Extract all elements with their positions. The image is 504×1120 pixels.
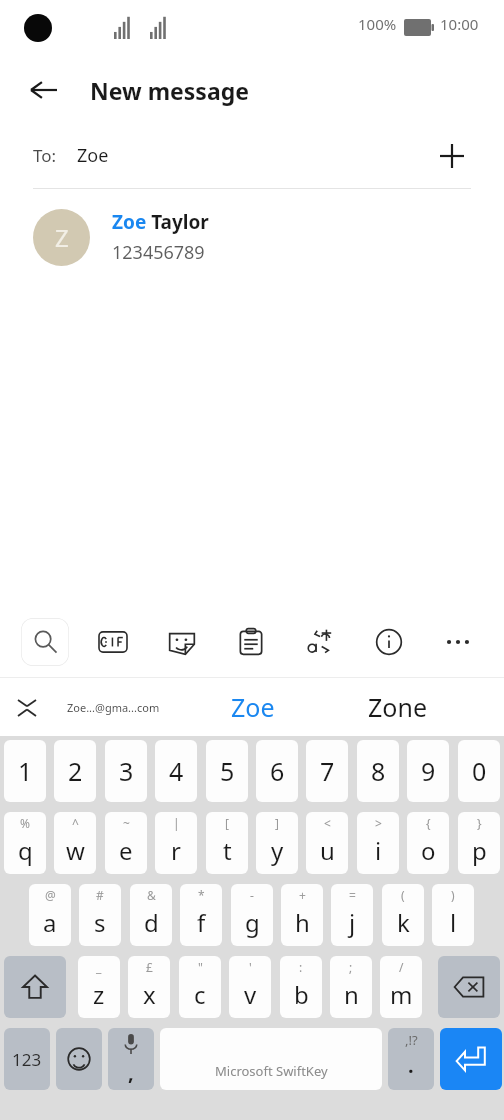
- staticText: g: [245, 906, 260, 939]
- button[interactable]: Backspace: [438, 956, 500, 1018]
- staticText: i: [375, 834, 382, 867]
- staticText: s: [94, 906, 106, 939]
- button[interactable]: ^: [54, 812, 96, 874]
- button[interactable]: ': [229, 956, 271, 1018]
- button[interactable]: More options: [434, 618, 482, 666]
- staticText: z: [93, 978, 105, 1011]
- button[interactable]: 8: [357, 740, 399, 802]
- staticText: 100%: [358, 14, 397, 34]
- staticText: 6: [270, 754, 285, 788]
- staticText: d: [144, 906, 159, 939]
- staticText: h: [295, 906, 310, 939]
- staticText: £: [146, 959, 153, 975]
- staticText: a: [43, 906, 57, 939]
- button[interactable]: ]: [256, 812, 298, 874]
- button[interactable]: >: [357, 812, 399, 874]
- staticText: t: [223, 834, 232, 867]
- button[interactable]: <: [306, 812, 348, 874]
- staticText: ~: [123, 815, 130, 831]
- button[interactable]: Send: [440, 1028, 502, 1090]
- staticText: u: [320, 834, 335, 867]
- staticText: y: [271, 834, 284, 867]
- staticText: 1: [18, 754, 33, 788]
- button[interactable]: 3: [105, 740, 147, 802]
- button[interactable]: %: [4, 812, 46, 874]
- button[interactable]: /: [380, 956, 422, 1018]
- staticText: Zoe Taylor: [112, 209, 209, 235]
- button[interactable]: 123: [4, 1028, 50, 1090]
- staticText: Z: [55, 221, 69, 254]
- staticText: [: [225, 815, 229, 831]
- button[interactable]: ~: [105, 812, 147, 874]
- staticText: 2: [68, 754, 83, 788]
- staticText: p: [472, 834, 487, 867]
- button[interactable]: _: [78, 956, 120, 1018]
- button[interactable]: ): [432, 884, 474, 946]
- button[interactable]: 7: [306, 740, 348, 802]
- button[interactable]: ": [179, 956, 221, 1018]
- button[interactable]: *: [180, 884, 222, 946]
- button[interactable]: @: [29, 884, 71, 946]
- staticText: _: [96, 959, 102, 975]
- button[interactable]: }: [458, 812, 500, 874]
- staticText: 123456789: [112, 240, 205, 265]
- button[interactable]: Back: [20, 66, 68, 114]
- button[interactable]: Voice input: [108, 1028, 154, 1090]
- button[interactable]: GIF: [89, 618, 137, 666]
- staticText: <: [324, 815, 331, 831]
- button[interactable]: #: [79, 884, 121, 946]
- staticText: }: [477, 815, 482, 831]
- button[interactable]: 6: [256, 740, 298, 802]
- staticText: 8: [371, 754, 386, 788]
- button[interactable]: Search: [21, 618, 69, 666]
- staticText: Zoe...@gma...com: [67, 700, 160, 715]
- staticText: ;: [349, 959, 353, 975]
- staticText: =: [349, 887, 356, 903]
- staticText: q: [18, 834, 33, 867]
- staticText: ,: [128, 1059, 134, 1086]
- staticText: 5: [220, 754, 235, 788]
- staticText: e: [119, 834, 133, 867]
- button[interactable]: +: [281, 884, 323, 946]
- button[interactable]: |: [155, 812, 197, 874]
- button[interactable]: 2: [54, 740, 96, 802]
- button[interactable]: Add recipient: [428, 132, 476, 180]
- button[interactable]: Emoji: [56, 1028, 102, 1090]
- staticText: New message: [90, 75, 249, 106]
- button[interactable]: {: [407, 812, 449, 874]
- button[interactable]: :: [280, 956, 322, 1018]
- button[interactable]: 0: [458, 740, 500, 802]
- button[interactable]: (: [382, 884, 424, 946]
- button[interactable]: Zoe...@gma...com: [58, 678, 168, 736]
- button[interactable]: Zoe: [195, 678, 310, 736]
- button[interactable]: Collapse keyboard toolbar: [6, 687, 48, 729]
- button[interactable]: Translate: [296, 618, 344, 666]
- staticText: k: [397, 906, 410, 939]
- button[interactable]: ;: [330, 956, 372, 1018]
- staticText: Zoe: [231, 690, 275, 724]
- staticText: %: [20, 815, 30, 831]
- button[interactable]: ,!?: [388, 1028, 434, 1090]
- button[interactable]: Info: [365, 618, 413, 666]
- button[interactable]: &: [130, 884, 172, 946]
- staticText: 123: [12, 1048, 42, 1071]
- button[interactable]: 5: [206, 740, 248, 802]
- staticText: 7: [320, 754, 335, 788]
- staticText: {: [426, 815, 431, 831]
- button[interactable]: 4: [155, 740, 197, 802]
- button[interactable]: Zone: [330, 678, 465, 736]
- staticText: (: [401, 887, 405, 903]
- button[interactable]: Clipboard: [227, 618, 275, 666]
- staticText: *: [198, 887, 205, 903]
- button[interactable]: Shift: [4, 956, 66, 1018]
- button[interactable]: 9: [407, 740, 449, 802]
- button[interactable]: -: [231, 884, 273, 946]
- button[interactable]: Stickers: [158, 618, 206, 666]
- staticText: v: [244, 978, 257, 1011]
- button[interactable]: [: [206, 812, 248, 874]
- button[interactable]: =: [331, 884, 373, 946]
- button[interactable]: Space: [160, 1028, 382, 1090]
- button[interactable]: £: [128, 956, 170, 1018]
- button[interactable]: 1: [4, 740, 46, 802]
- button[interactable]: Z: [0, 189, 504, 285]
